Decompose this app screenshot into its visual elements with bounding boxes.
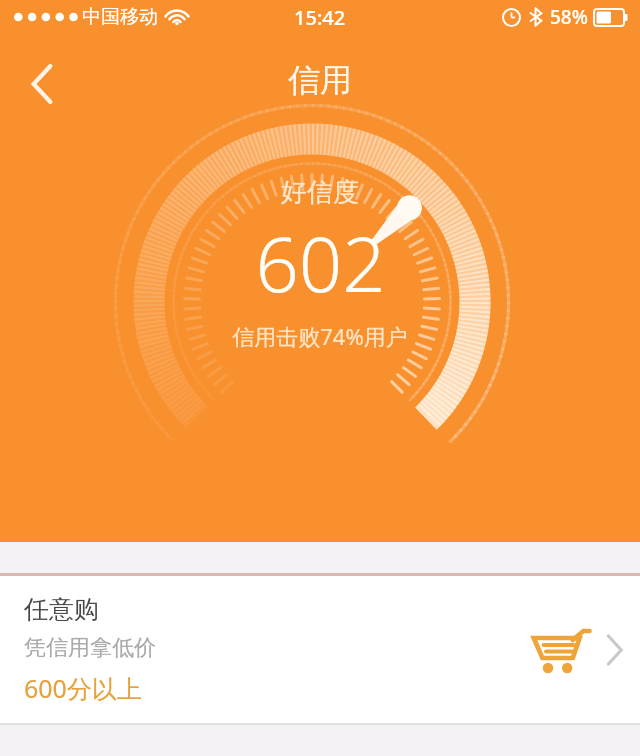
other: 任意购 [530, 625, 592, 675]
button[interactable]: 任意购 [0, 576, 640, 723]
staticText: 600分以上 [24, 671, 142, 705]
staticText: 任意购 [24, 594, 99, 625]
staticText: 602 [255, 211, 386, 315]
staticText: 信用 [288, 60, 352, 100]
other: 更多 [606, 636, 622, 664]
staticText: 中国移动 [82, 5, 158, 29]
staticText: 58% [550, 4, 588, 30]
staticText: 15:42 [294, 4, 346, 31]
staticText: 凭信用拿低价 [24, 634, 156, 662]
staticText: 好信度 [281, 176, 359, 209]
button[interactable]: 返回 [10, 52, 74, 116]
staticText: 信用击败74%用户 [232, 321, 408, 351]
